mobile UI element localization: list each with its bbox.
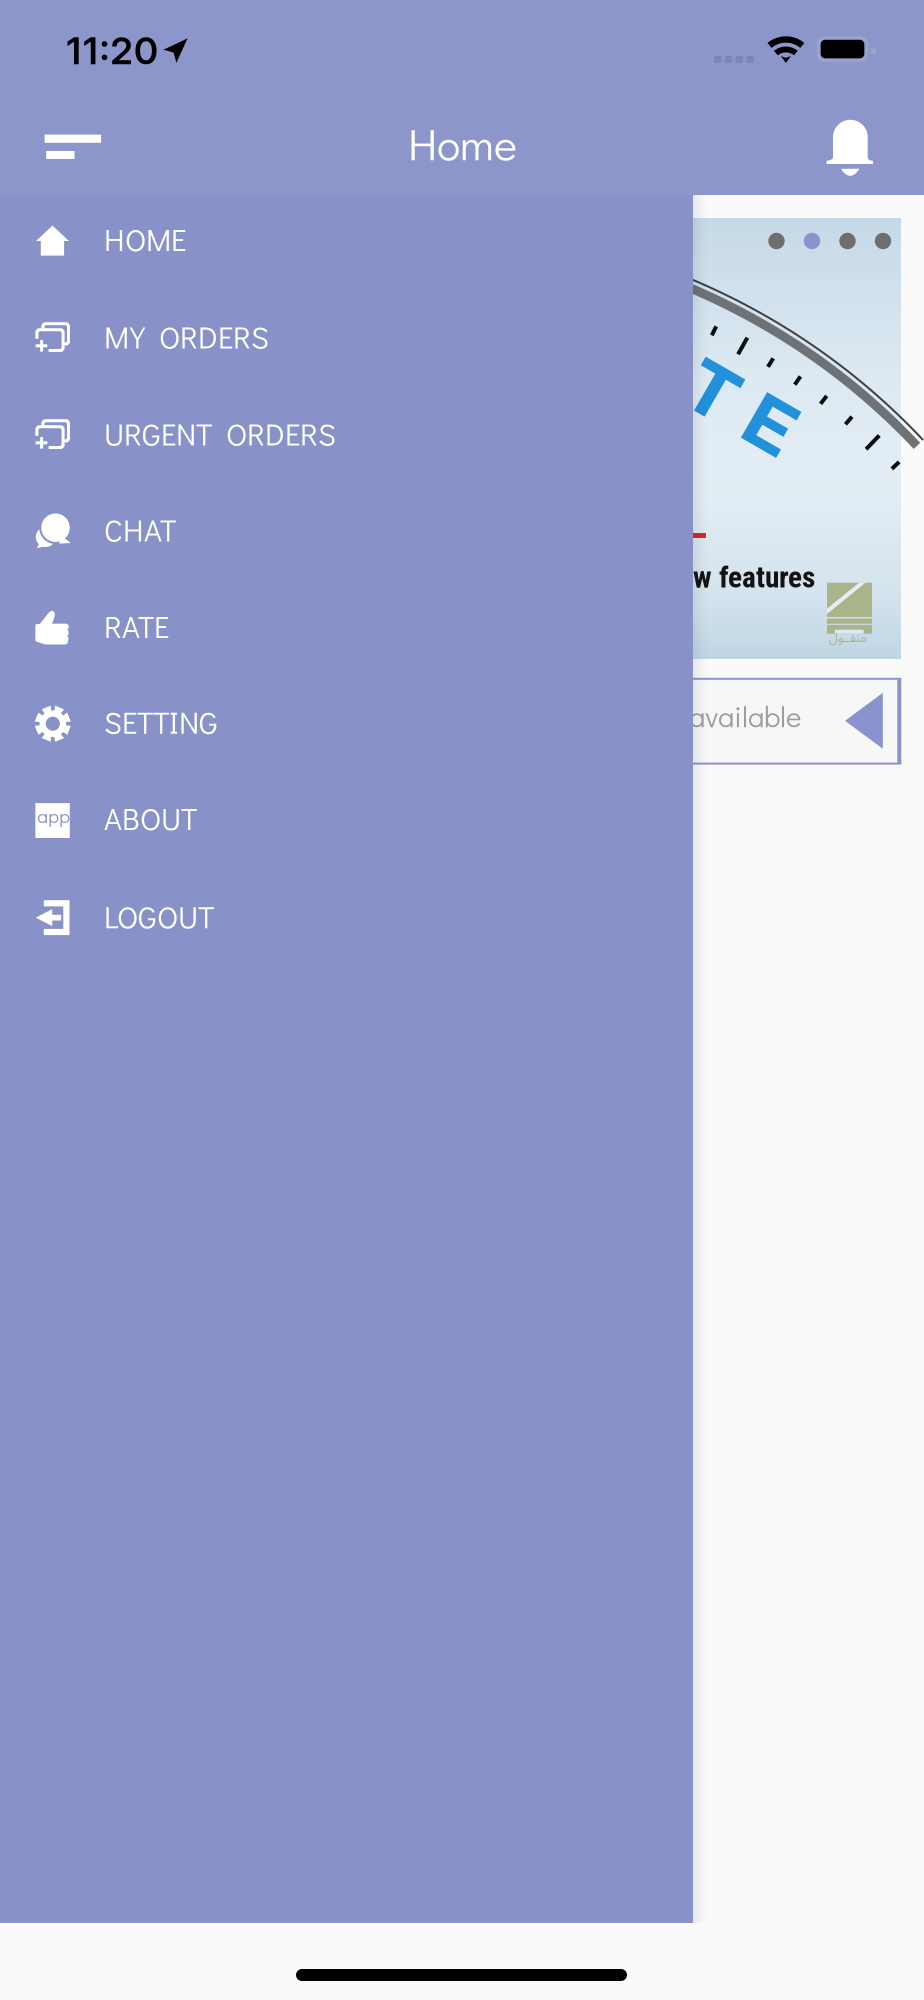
staticText: MY ORDERS bbox=[104, 316, 269, 356]
button[interactable]: LOGOUT bbox=[0, 869, 693, 966]
button[interactable]: RATE bbox=[0, 579, 693, 676]
staticText: SETTING bbox=[104, 702, 218, 742]
staticText: CHAT bbox=[104, 509, 176, 550]
button[interactable]: app bbox=[0, 771, 693, 868]
staticText: URGENT ORDERS bbox=[104, 413, 336, 453]
button[interactable]: services available bbox=[693, 678, 924, 768]
button[interactable]: Notifications bbox=[813, 111, 887, 185]
staticText: HOME bbox=[104, 219, 186, 259]
button[interactable]: MY ORDERS bbox=[0, 289, 693, 386]
staticText: services available bbox=[579, 696, 801, 735]
staticText: RATE bbox=[104, 606, 169, 646]
staticText: ABOUT bbox=[104, 798, 197, 838]
button[interactable]: CHAT bbox=[0, 483, 693, 579]
button[interactable]: Open menu bbox=[30, 115, 116, 189]
staticText: 11:20 bbox=[67, 28, 158, 73]
button[interactable]: URGENT ORDERS bbox=[0, 386, 693, 483]
staticText: new features bbox=[665, 560, 815, 595]
staticText: منقــول bbox=[828, 625, 866, 651]
staticText: LOGOUT bbox=[104, 896, 214, 936]
staticText: Home bbox=[408, 115, 517, 172]
button[interactable]: SETTING bbox=[0, 675, 693, 771]
button[interactable]: HOME bbox=[0, 192, 693, 289]
staticText: app bbox=[37, 803, 70, 828]
staticText: TE bbox=[685, 362, 800, 453]
